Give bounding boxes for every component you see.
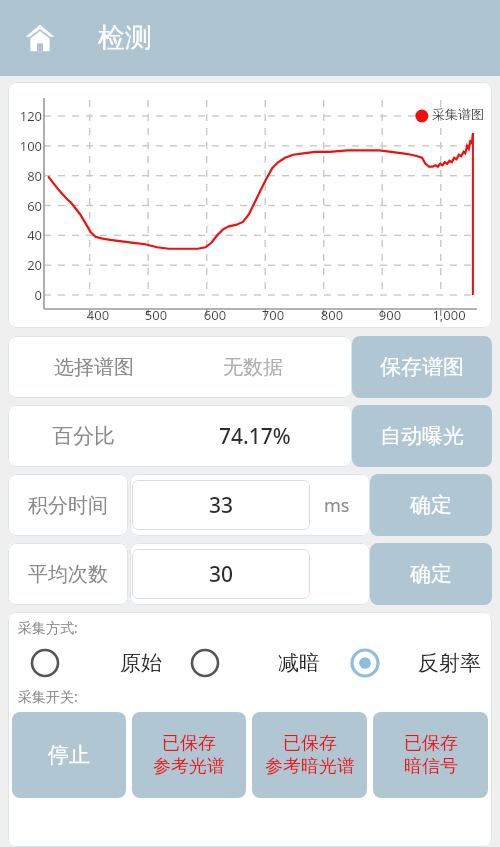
- staticText: 已保存: [162, 732, 216, 755]
- button[interactable]: 百分比: [8, 405, 352, 467]
- staticText: 900: [366, 306, 414, 324]
- staticText: 400: [74, 306, 122, 324]
- button[interactable]: 33: [132, 480, 310, 530]
- staticText: 采集谱图: [432, 106, 484, 122]
- staticText: 700: [249, 306, 297, 324]
- button[interactable]: Home: [16, 14, 64, 62]
- staticText: 无数据: [223, 355, 283, 380]
- button[interactable]: 停止: [12, 712, 126, 798]
- staticText: 参考光谱: [153, 755, 225, 778]
- button[interactable]: 选择谱图: [8, 336, 352, 398]
- staticText: 积分时间: [28, 493, 108, 518]
- staticText: 20: [8, 256, 42, 274]
- button[interactable]: 自动曝光: [352, 405, 492, 467]
- staticText: 120: [8, 107, 42, 125]
- staticText: 1,000: [425, 306, 473, 324]
- staticText: 已保存: [283, 732, 337, 755]
- staticText: 采集方式:: [18, 618, 78, 637]
- button[interactable]: 反射率: [350, 648, 481, 678]
- staticText: 参考暗光谱: [265, 755, 355, 778]
- staticText: 减暗: [278, 650, 320, 676]
- staticText: 确定: [410, 492, 452, 518]
- staticText: 采集开关:: [18, 687, 78, 706]
- button[interactable]: 保存谱图: [352, 336, 492, 398]
- button[interactable]: 已保存: [252, 712, 367, 798]
- button[interactable]: 原始: [30, 648, 162, 678]
- staticText: 74.17%: [219, 422, 291, 451]
- staticText: 暗信号: [404, 755, 458, 778]
- staticText: 0: [8, 286, 42, 304]
- button[interactable]: 已保存: [373, 712, 488, 798]
- staticText: 保存谱图: [380, 354, 464, 380]
- staticText: 自动曝光: [380, 423, 464, 449]
- button[interactable]: 确定: [370, 474, 492, 536]
- staticText: ms: [324, 493, 350, 518]
- staticText: 确定: [410, 561, 452, 587]
- staticText: 30: [209, 560, 234, 589]
- staticText: 600: [191, 306, 239, 324]
- button[interactable]: 确定: [370, 543, 492, 605]
- staticText: 500: [132, 306, 180, 324]
- staticText: 反射率: [418, 650, 481, 676]
- button[interactable]: 减暗: [190, 648, 320, 678]
- staticText: 33: [209, 491, 234, 520]
- staticText: 800: [308, 306, 356, 324]
- staticText: 百分比: [52, 423, 115, 449]
- staticText: 60: [8, 197, 42, 215]
- staticText: 40: [8, 226, 42, 244]
- staticText: 原始: [120, 650, 162, 676]
- staticText: 已保存: [404, 732, 458, 755]
- staticText: 平均次数: [28, 562, 108, 587]
- staticText: 选择谱图: [54, 355, 134, 380]
- button[interactable]: 30: [132, 549, 310, 599]
- staticText: 80: [8, 167, 42, 185]
- staticText: 停止: [48, 742, 90, 768]
- staticText: 检测: [98, 21, 152, 55]
- staticText: 100: [8, 137, 42, 155]
- button[interactable]: 已保存: [132, 712, 246, 798]
